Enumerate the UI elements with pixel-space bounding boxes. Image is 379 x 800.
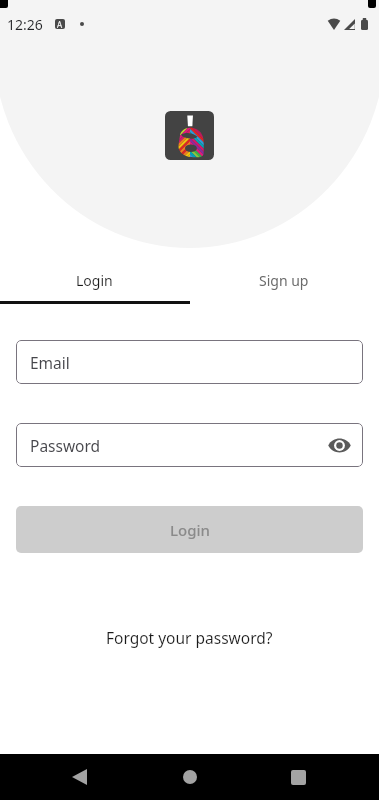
staticText: Email	[30, 352, 70, 373]
staticText: A	[57, 19, 63, 29]
button[interactable]: Password	[16, 423, 363, 467]
staticText: Forgot your password?	[106, 627, 273, 648]
button[interactable]: Login	[16, 506, 363, 553]
staticText: Password	[30, 435, 101, 456]
button[interactable]: Recent apps	[275, 761, 321, 793]
button[interactable]: Show password	[324, 430, 354, 460]
other: App logo	[165, 111, 214, 160]
button[interactable]: Forgot your password?	[100, 624, 279, 651]
staticText: Login	[170, 520, 210, 540]
button[interactable]: Home	[167, 761, 213, 793]
staticText: Login	[76, 271, 113, 290]
button[interactable]: Email	[16, 340, 363, 384]
button[interactable]: Back	[56, 761, 102, 793]
button[interactable]: Sign up	[189, 262, 379, 299]
staticText: Sign up	[259, 271, 309, 290]
button[interactable]: Login	[0, 262, 189, 299]
staticText: 12:26	[7, 15, 43, 34]
